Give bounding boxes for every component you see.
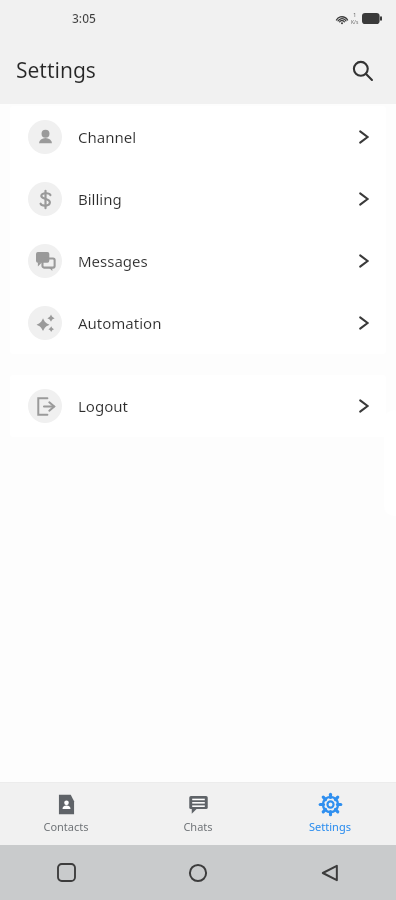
button[interactable]: Billing bbox=[10, 168, 386, 230]
button[interactable]: Automation bbox=[10, 292, 386, 354]
button[interactable]: Channel bbox=[10, 106, 386, 168]
button[interactable]: Chats bbox=[132, 783, 264, 845]
staticText: Messages bbox=[78, 251, 358, 271]
staticText: Channel bbox=[78, 127, 358, 147]
staticText: Logout bbox=[78, 396, 358, 416]
staticText: Settings bbox=[16, 56, 96, 85]
button[interactable]: Contacts bbox=[0, 783, 132, 845]
button[interactable]: Search bbox=[340, 48, 384, 92]
staticText: Contacts bbox=[43, 819, 89, 834]
button[interactable]: Back bbox=[264, 845, 396, 900]
staticText: 1 bbox=[353, 11, 357, 19]
button[interactable]: Messages bbox=[10, 230, 386, 292]
button[interactable]: Home bbox=[132, 845, 264, 900]
button[interactable]: Logout bbox=[10, 375, 386, 437]
button[interactable]: Recent apps bbox=[0, 845, 132, 900]
staticText: Billing bbox=[78, 189, 358, 209]
staticText: Chats bbox=[183, 819, 213, 834]
staticText: K/s bbox=[351, 19, 359, 26]
staticText: 3:05 bbox=[72, 10, 96, 26]
staticText: Automation bbox=[78, 313, 358, 333]
staticText: Settings bbox=[309, 819, 351, 834]
button[interactable]: Settings bbox=[264, 783, 396, 845]
